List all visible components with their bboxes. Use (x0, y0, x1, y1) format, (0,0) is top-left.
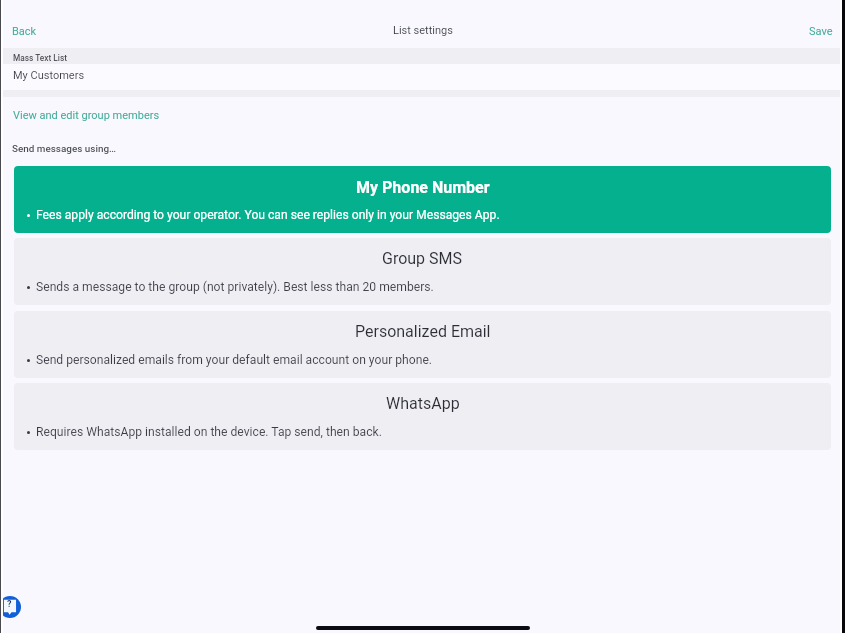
staticText: Mass Text List (13, 53, 67, 63)
button[interactable]: Back (4, 22, 45, 41)
staticText: List settings (393, 24, 453, 37)
staticText: Send messages using… (12, 143, 117, 155)
button[interactable]: Save (801, 22, 841, 41)
staticText: Sends a message to the group (not privat… (36, 280, 434, 294)
staticText: Fees apply according to your operator. Y… (36, 208, 500, 222)
staticText: View and edit group members (13, 109, 160, 122)
button[interactable]: View and edit group members (6, 106, 167, 125)
button[interactable]: Help (0, 596, 21, 618)
staticText: ? (7, 599, 12, 610)
staticText: Back (12, 25, 37, 38)
button[interactable]: My Customers (0, 64, 845, 90)
staticText: My Phone Number (356, 178, 490, 197)
staticText: Send personalized emails from your defau… (36, 353, 433, 367)
staticText: Group SMS (382, 249, 463, 268)
button[interactable]: WhatsApp (14, 383, 831, 450)
staticText: Save (809, 25, 833, 38)
staticText: Personalized Email (355, 322, 491, 341)
staticText: WhatsApp (386, 394, 460, 413)
button[interactable]: Group SMS (14, 238, 831, 305)
button[interactable]: Personalized Email (14, 311, 831, 378)
staticText: My Customers (13, 69, 85, 82)
button[interactable]: My Phone Number (14, 166, 831, 233)
staticText: Requires WhatsApp installed on the devic… (36, 425, 382, 439)
